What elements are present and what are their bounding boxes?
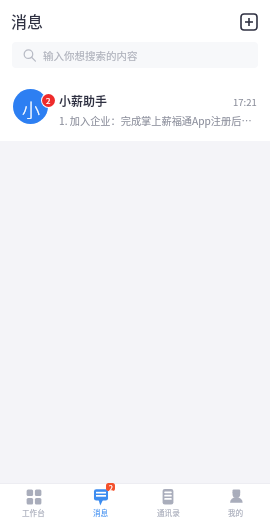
staticText: 我的 — [228, 507, 244, 518]
button[interactable]: Add — [240, 13, 258, 31]
staticText: 通讯录 — [157, 507, 180, 518]
button[interactable]: 通讯录 — [134, 484, 202, 521]
staticText: 消息 — [93, 507, 109, 518]
button[interactable]: 输入你想搜索的内容 — [12, 42, 258, 68]
button[interactable]: 2 — [67, 484, 134, 521]
staticText: 小薪助手 — [59, 92, 108, 109]
staticText: 小 — [22, 96, 40, 122]
staticText: 输入你想搜索的内容 — [43, 48, 138, 63]
staticText: 消息 — [11, 9, 44, 32]
staticText: 工作台 — [22, 507, 45, 518]
staticText: 2 — [109, 483, 113, 491]
button[interactable]: 我的 — [202, 484, 270, 521]
staticText: 2 — [46, 95, 51, 107]
staticText: 17:21 — [233, 95, 257, 109]
staticText: 1. 加入企业：完成掌上薪福通App注册后… — [59, 113, 252, 128]
button[interactable]: 工作台 — [0, 484, 67, 521]
button[interactable]: 小 — [0, 89, 270, 141]
